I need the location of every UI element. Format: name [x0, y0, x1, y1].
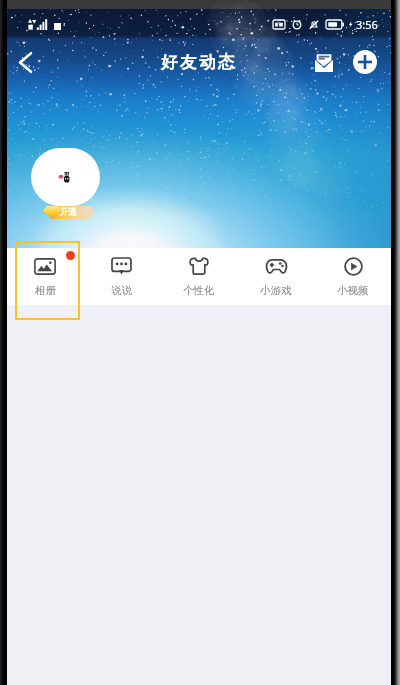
button[interactable]: 开通 — [50, 206, 94, 219]
staticText: 个性化 — [183, 284, 215, 297]
button[interactable]: 说说 — [83, 248, 160, 305]
button[interactable]: Profile avatar — [31, 148, 100, 206]
staticText: 说说 — [111, 284, 132, 297]
button[interactable]: Messages — [307, 45, 341, 79]
button[interactable]: Back — [7, 44, 43, 80]
staticText: 3:56 — [356, 17, 378, 32]
button[interactable]: 小游戏 — [237, 248, 314, 305]
button[interactable]: 个性化 — [160, 248, 237, 305]
staticText: 小视频 — [337, 284, 369, 297]
staticText: 好友动态 — [161, 52, 237, 73]
button[interactable]: 小视频 — [314, 248, 391, 305]
staticText: 小游戏 — [260, 284, 292, 297]
staticText: 开通 — [60, 207, 77, 218]
button[interactable]: Add — [348, 45, 382, 79]
staticText: 相册 — [35, 284, 56, 297]
button[interactable]: 相册 — [7, 248, 83, 305]
